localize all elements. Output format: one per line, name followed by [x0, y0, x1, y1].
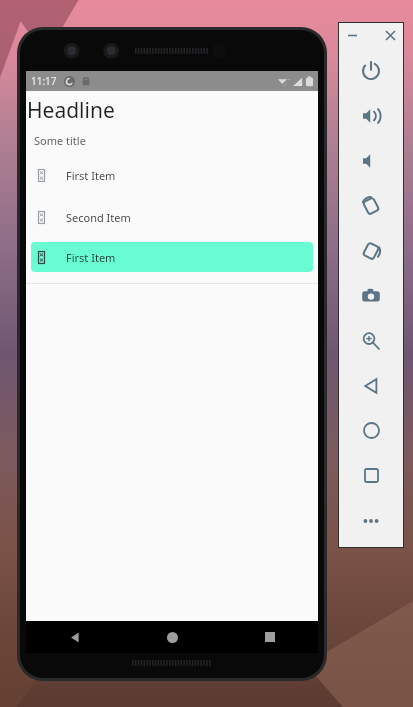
button[interactable]: Zoom [338, 318, 404, 363]
staticText: Some title [34, 133, 86, 148]
button[interactable]: Second Item [31, 207, 313, 227]
staticText: Headline [27, 96, 115, 125]
button[interactable]: Volume down [338, 138, 404, 183]
button[interactable]: Minimize [342, 25, 362, 45]
button[interactable]: Power [338, 48, 404, 93]
button[interactable]: More [338, 498, 404, 543]
button[interactable]: Take screenshot [338, 273, 404, 318]
button[interactable]: Volume up [338, 93, 404, 138]
button[interactable]: Recent apps [221, 621, 318, 653]
button[interactable]: Recent apps [338, 453, 404, 498]
button[interactable]: First Item [31, 165, 313, 185]
staticText: 11:17 [31, 74, 57, 88]
staticText: First Item [66, 168, 116, 183]
button[interactable]: Rotate left [338, 183, 404, 228]
staticText: First Item [66, 250, 116, 265]
button[interactable]: Home [338, 408, 404, 453]
button[interactable]: Back [26, 621, 124, 653]
button[interactable]: Home [124, 621, 221, 653]
staticText: Second Item [66, 210, 131, 225]
button[interactable]: Close [380, 25, 400, 45]
button[interactable]: Rotate right [338, 228, 404, 273]
button[interactable]: Back [338, 363, 404, 408]
button[interactable]: First Item [31, 242, 313, 272]
